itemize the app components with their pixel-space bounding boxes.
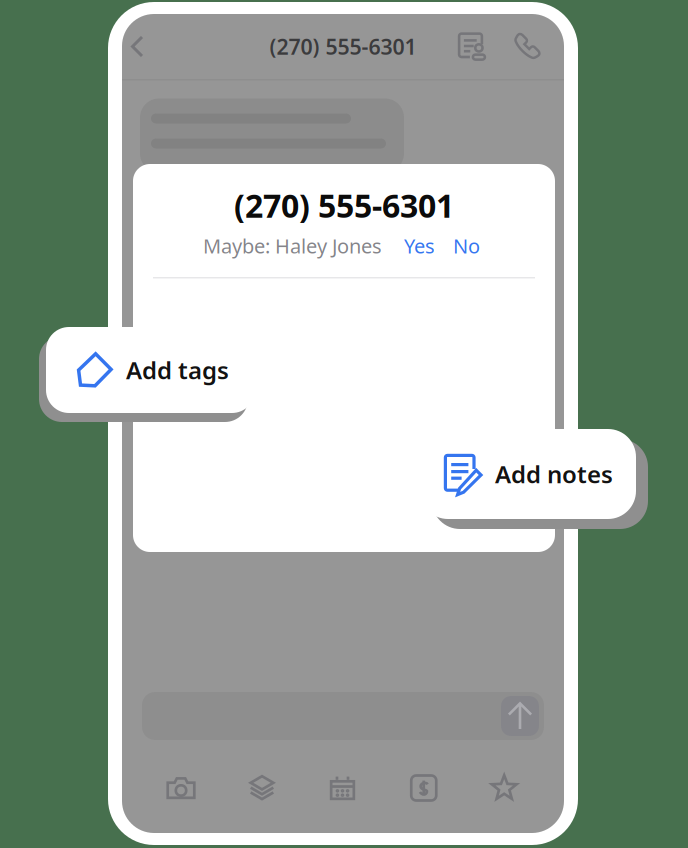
- button[interactable]: Back: [115, 19, 159, 73]
- staticText: (270) 555-6301: [234, 184, 454, 226]
- button[interactable]: Library: [222, 765, 303, 811]
- staticText: Maybe: Haley Jones: [203, 232, 382, 259]
- staticText: No: [453, 232, 480, 259]
- staticText: Yes: [404, 232, 435, 259]
- button[interactable]: Send: [499, 693, 541, 739]
- button[interactable]: Call: [503, 19, 553, 73]
- staticText: Add tags: [126, 354, 229, 386]
- button[interactable]: Favorites: [464, 765, 545, 811]
- button[interactable]: Camera: [141, 765, 222, 811]
- button[interactable]: Add notes: [420, 429, 636, 519]
- button[interactable]: Calendar: [303, 765, 383, 811]
- button[interactable]: Add tags: [46, 327, 255, 413]
- staticText: (270) 555-6301: [269, 32, 416, 61]
- button[interactable]: No: [446, 228, 485, 263]
- staticText: Add notes: [495, 458, 613, 490]
- button[interactable]: Contact details: [448, 19, 498, 73]
- button[interactable]: Yes: [382, 228, 446, 263]
- button[interactable]: Payments: [383, 765, 464, 811]
